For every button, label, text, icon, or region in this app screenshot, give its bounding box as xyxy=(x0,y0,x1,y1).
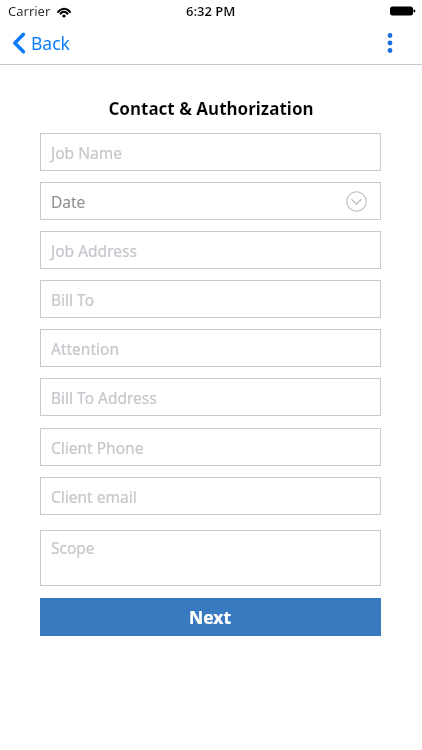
staticText: Back xyxy=(31,31,70,55)
staticText: Bill To Address xyxy=(51,387,157,408)
button[interactable]: Next xyxy=(40,598,381,636)
staticText: Carrier xyxy=(8,2,51,20)
staticText: Bill To xyxy=(51,289,95,310)
staticText: Attention xyxy=(51,338,119,359)
button[interactable]: Back xyxy=(13,31,70,55)
button[interactable]: Scope xyxy=(40,530,381,586)
staticText: Next xyxy=(189,605,232,629)
staticText: Contact & Authorization xyxy=(0,97,422,120)
staticText: Client email xyxy=(51,486,137,507)
button[interactable]: Attention xyxy=(40,329,381,367)
staticText: 6:32 PM xyxy=(186,2,236,20)
staticText: Scope xyxy=(51,537,95,558)
button[interactable]: Date xyxy=(40,182,381,220)
button[interactable]: Client Phone xyxy=(40,428,381,466)
button[interactable]: Bill To xyxy=(40,280,381,318)
staticText: Job Address xyxy=(51,240,137,261)
button[interactable]: Bill To Address xyxy=(40,378,381,416)
button[interactable]: Job Name xyxy=(40,133,381,171)
staticText: Date xyxy=(51,191,86,212)
staticText: Job Name xyxy=(51,142,122,163)
button[interactable]: Job Address xyxy=(40,231,381,269)
button[interactable] xyxy=(380,33,400,53)
staticText: Client Phone xyxy=(51,437,144,458)
button[interactable]: Client email xyxy=(40,477,381,515)
